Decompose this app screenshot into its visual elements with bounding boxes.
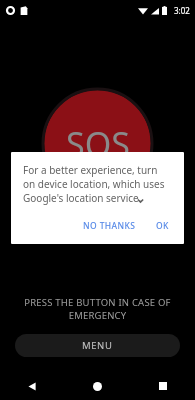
button[interactable]: SOS emergency button — [42, 88, 153, 199]
staticText: MENU — [82, 339, 113, 352]
staticText: NO THANKS — [83, 220, 136, 232]
button[interactable]: Home — [65, 372, 130, 400]
staticText: 3:02 — [174, 5, 190, 16]
staticText: PRESS THE BUTTON IN CASE OF EMERGENCY — [18, 296, 177, 322]
button[interactable]: Expand details — [137, 197, 144, 204]
button[interactable]: Recent apps — [130, 372, 195, 400]
button[interactable]: MENU — [15, 334, 180, 357]
button[interactable]: Back — [0, 372, 65, 400]
staticText: For a better experience, turn on device … — [23, 163, 172, 205]
button[interactable]: NO THANKS — [78, 216, 141, 236]
button[interactable]: OK — [151, 216, 174, 236]
staticText: OK — [156, 220, 169, 232]
staticText: SOS — [66, 121, 130, 167]
